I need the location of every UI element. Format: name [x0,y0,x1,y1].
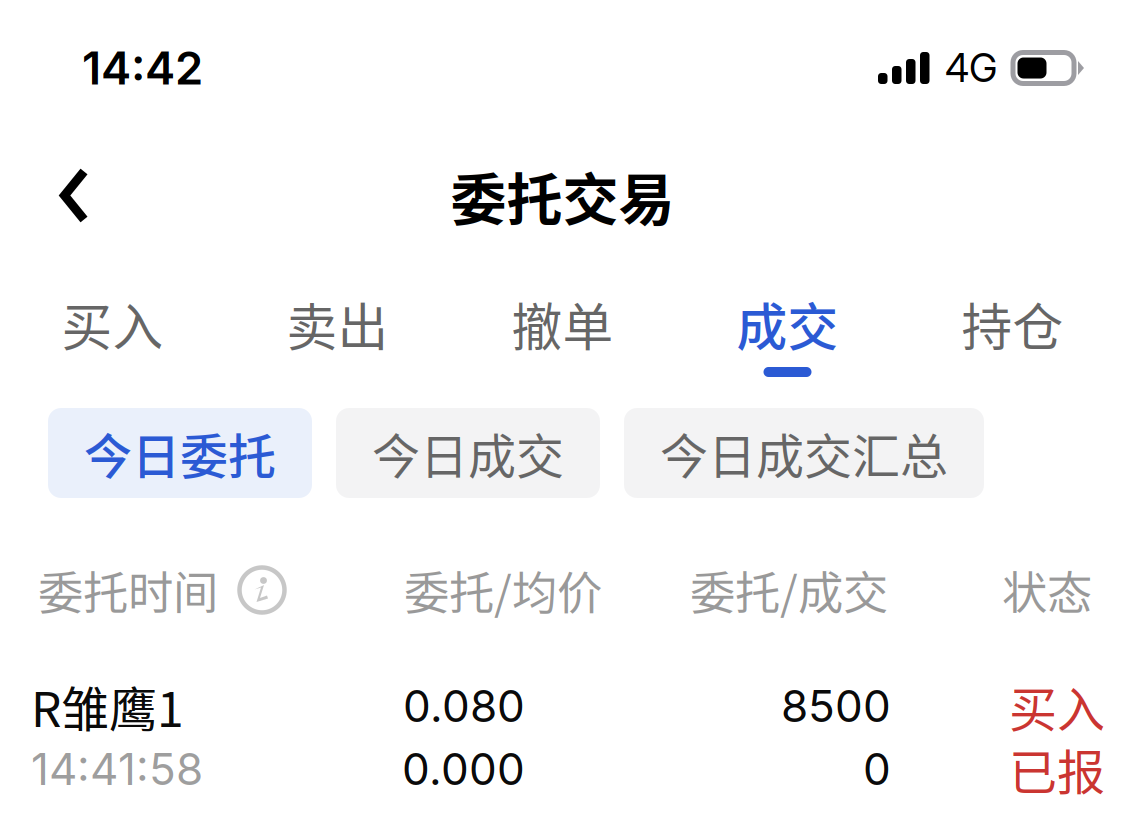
staticText: 持仓 [961,287,1063,361]
staticText: 4G [945,45,997,91]
button[interactable]: 今日成交 [336,408,600,498]
button[interactable]: 买入 [0,255,225,377]
staticText: 0 [863,742,891,796]
staticText: 14:42 [82,41,203,95]
staticText: 成交 [736,287,838,361]
button[interactable]: 卖出 [225,255,450,377]
staticText: 买入 [1009,671,1105,741]
staticText: 已报 [1009,734,1105,804]
button[interactable]: 成交 [675,255,900,377]
staticText: R雏鹰1 [31,671,184,741]
staticText: 0.000 [402,742,525,796]
staticText: 8500 [781,679,891,733]
staticText: 委托时间 [38,557,218,623]
staticText: 卖出 [286,287,388,361]
staticText: 今日成交汇总 [660,418,948,488]
staticText: 状态 [1002,557,1092,623]
staticText: 14:41:58 [31,742,203,796]
button[interactable]: Back [0,145,129,245]
staticText: 撤单 [511,287,613,361]
staticText: 0.080 [403,679,525,733]
button[interactable]: 今日委托 [48,408,312,498]
button[interactable]: 今日成交汇总 [624,408,984,498]
staticText: 委托交易 [450,155,674,236]
button[interactable]: 委托时间说明 [38,557,274,623]
staticText: 委托/均价 [404,557,602,623]
staticText: 委托/成交 [690,557,888,623]
staticText: 今日成交 [372,418,564,488]
staticText: 买入 [61,287,163,361]
button[interactable]: 撤单 [450,255,675,377]
button[interactable]: R雏鹰1 [0,676,1125,802]
staticText: 今日委托 [84,418,276,488]
button[interactable]: 持仓 [900,255,1125,377]
